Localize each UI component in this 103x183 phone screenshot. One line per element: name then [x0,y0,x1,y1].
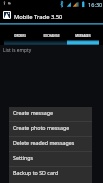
button[interactable]: Create message [9,107,92,122]
staticText: Settings [13,154,34,161]
button[interactable]: Delete readed messages [9,137,92,152]
staticText: MESSAGES [75,34,91,38]
button[interactable]: Backup to SD card [9,167,92,182]
staticText: Backup to SD card [13,169,59,176]
button[interactable]: Settings [9,152,92,167]
staticText: ORDERS [14,34,26,38]
staticText: Mobile Trade 3.50 [14,13,63,21]
button[interactable]: MESSAGES [67,25,99,45]
button[interactable]: Create photo message [9,122,92,137]
button[interactable]: ORDERS [4,25,35,45]
staticText: 16:30 [88,1,103,9]
button[interactable]: EXCHANGE [35,25,67,45]
staticText: EXCHANGE [43,34,60,38]
staticText: Delete readed messages [13,139,75,146]
staticText: List is empty [3,47,32,54]
staticText: Create photo message [13,124,70,131]
staticText: Create message [13,109,53,116]
